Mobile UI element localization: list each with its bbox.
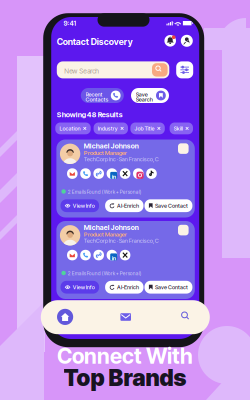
button[interactable]: Notifications: [164, 35, 176, 47]
button[interactable]: Home: [57, 309, 73, 325]
staticText: AI-Enrich: [117, 202, 139, 209]
staticText: Location: [59, 125, 80, 132]
staticText: Showing 48 Results: [57, 110, 123, 119]
staticText: Skill: [174, 125, 183, 132]
staticText: Search: [136, 96, 153, 103]
button[interactable]: AI-Enrich: [105, 199, 143, 212]
staticText: Job Title: [135, 125, 155, 132]
button[interactable]: Call: [80, 250, 91, 260]
button[interactable]: View Info: [60, 199, 99, 212]
button[interactable]: Recent: [81, 88, 124, 103]
button[interactable]: X: [120, 168, 130, 179]
staticText: Michael Johnson: [84, 223, 139, 232]
staticText: Contacts: [86, 96, 109, 103]
button[interactable]: Instagram: [133, 168, 144, 179]
button[interactable]: Select contact: [178, 143, 189, 154]
button[interactable]: LinkedIn: [107, 168, 117, 179]
staticText: Product Manager: [84, 231, 127, 238]
button[interactable]: Call: [80, 168, 91, 179]
button[interactable]: LinkedIn: [107, 250, 117, 260]
button[interactable]: Save Contact: [144, 281, 192, 294]
staticText: Save Contact: [155, 202, 188, 209]
button[interactable]: Messages: [120, 313, 131, 321]
button[interactable]: TikTok: [146, 168, 157, 179]
staticText: AI-Enrich: [117, 284, 139, 290]
staticText: Save: [136, 91, 148, 98]
button[interactable]: Save: [131, 88, 169, 103]
staticText: Industry: [98, 125, 118, 132]
button[interactable]: View Info: [60, 281, 99, 294]
button[interactable]: Search: [182, 312, 189, 319]
staticText: New Search: [64, 67, 99, 75]
staticText: Top Brands: [63, 364, 186, 391]
staticText: in: [112, 255, 116, 261]
button[interactable]: Select contact: [178, 225, 189, 235]
button[interactable]: X: [120, 250, 130, 260]
button[interactable]: Website: [93, 168, 104, 179]
button[interactable]: Website: [93, 250, 104, 260]
staticText: TechCorp Inc · San Francisco, C: [84, 237, 159, 244]
staticText: Contact Discovery: [57, 36, 133, 47]
button[interactable]: Location: [55, 122, 91, 134]
staticText: Connect With: [57, 343, 193, 369]
staticText: Michael Johnson: [84, 142, 139, 150]
staticText: View Info: [73, 284, 95, 290]
button[interactable]: Job Title: [130, 122, 165, 134]
button[interactable]: Skill: [170, 122, 193, 134]
staticText: Save Contact: [155, 284, 188, 290]
button[interactable]: AI-Enrich: [105, 281, 143, 294]
button[interactable]: Industry: [94, 122, 128, 134]
staticText: 9:41: [63, 19, 76, 27]
staticText: TechCorp Inc · San Francisco, C: [84, 156, 159, 163]
button[interactable]: Profile: [181, 35, 193, 47]
staticText: Recent: [86, 91, 103, 98]
staticText: 2 Emails Found (Work + Personal): [68, 189, 142, 195]
button[interactable]: Email: [67, 168, 78, 179]
staticText: Product Manager: [84, 149, 127, 156]
button[interactable]: Filters: [176, 61, 193, 78]
staticText: 2 Emails Found (Work + Personal): [68, 270, 142, 276]
button[interactable]: Email: [67, 250, 78, 260]
button[interactable]: New search: [57, 61, 169, 78]
staticText: in: [112, 173, 116, 180]
button[interactable]: Save Contact: [144, 199, 192, 212]
staticText: View Info: [73, 202, 95, 209]
